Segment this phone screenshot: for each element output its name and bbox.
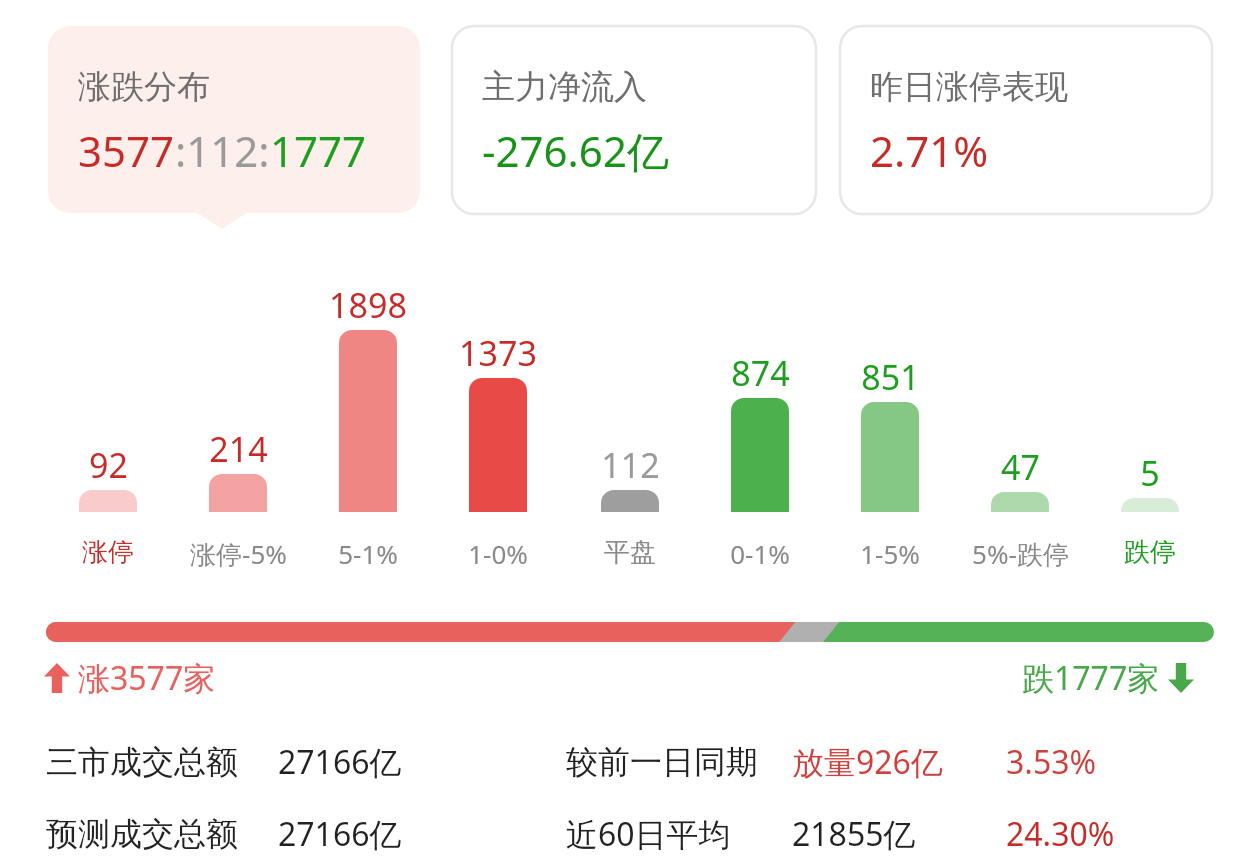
staticText: 涨跌分布	[78, 66, 210, 108]
staticText: 5-1%	[338, 536, 398, 571]
staticText: 47	[1001, 444, 1040, 490]
button[interactable]: 主力净流入	[452, 26, 816, 214]
staticText: 跌停	[1124, 536, 1176, 569]
staticText: 5%-跌停	[972, 536, 1069, 572]
other: Declining	[1168, 663, 1194, 693]
staticText: 3.53%	[1006, 740, 1097, 784]
staticText: 1898	[329, 282, 407, 328]
staticText: 预测成交总额	[46, 814, 238, 854]
staticText: 放量926亿	[792, 740, 943, 784]
button[interactable]: 涨跌分布	[48, 26, 420, 213]
staticText: 平盘	[604, 536, 656, 569]
staticText: 3577	[78, 122, 175, 179]
button[interactable]: 昨日涨停表现	[840, 26, 1212, 214]
staticText: 1373	[459, 330, 537, 376]
staticText: 24.30%	[1006, 812, 1115, 856]
staticText: 近60日平均	[566, 812, 731, 856]
other: Advancing	[44, 663, 70, 693]
staticText: 27166亿	[278, 812, 402, 856]
staticText: 851	[861, 354, 920, 400]
button[interactable]: 跌1777家	[1022, 656, 1194, 700]
staticText: 27166亿	[278, 740, 402, 784]
staticText: 21855亿	[792, 812, 916, 856]
staticText: 1-5%	[860, 536, 920, 571]
staticText: 92	[89, 442, 128, 488]
staticText: -276.62亿	[482, 122, 669, 179]
button[interactable]: Advancing	[44, 656, 216, 700]
staticText: 1-0%	[468, 536, 528, 571]
staticText: 较前一日同期	[566, 742, 758, 782]
staticText: 涨3577家	[78, 656, 216, 700]
staticText: 跌1777家	[1022, 656, 1160, 700]
staticText: 昨日涨停表现	[870, 66, 1068, 108]
staticText: 1777	[270, 122, 367, 179]
staticText: 5	[1140, 450, 1160, 496]
staticText: 涨停-5%	[190, 536, 287, 572]
staticText: 三市成交总额	[46, 742, 238, 782]
staticText: 214	[209, 426, 268, 472]
staticText: :112:	[175, 122, 270, 179]
staticText: 主力净流入	[482, 66, 647, 108]
staticText: 0-1%	[730, 536, 790, 571]
staticText: 2.71%	[870, 122, 989, 179]
staticText: 涨停	[82, 536, 134, 569]
staticText: 874	[731, 350, 790, 396]
staticText: 112	[601, 442, 660, 488]
